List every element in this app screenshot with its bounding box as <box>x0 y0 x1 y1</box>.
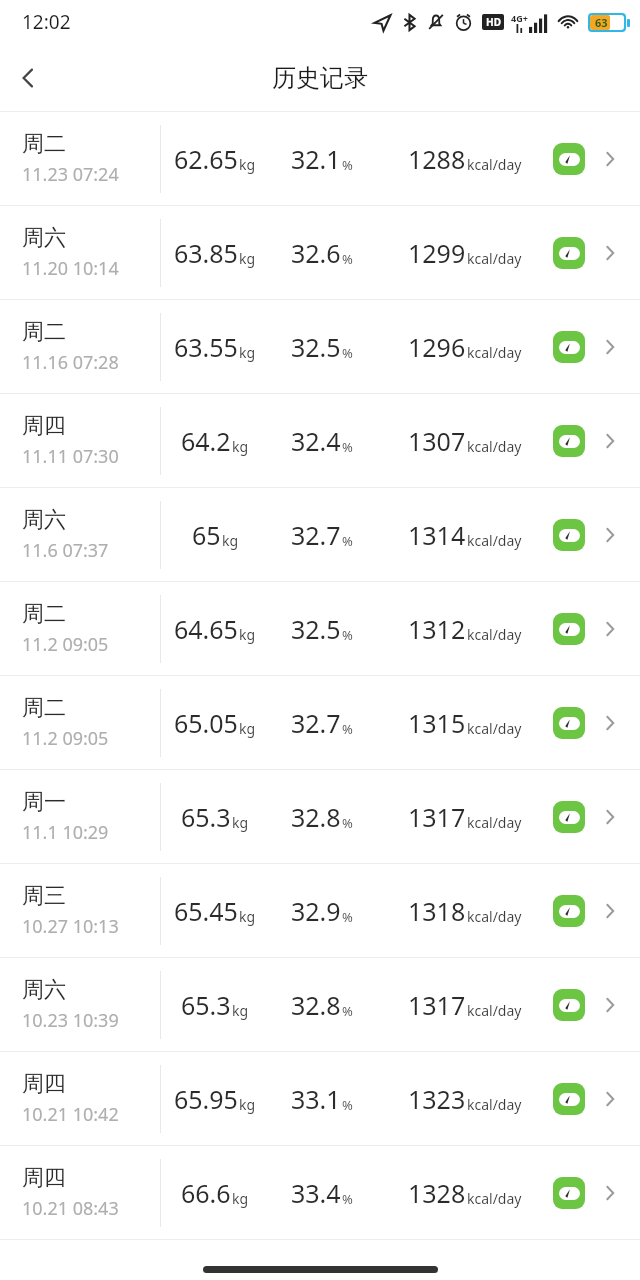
staticText: kg <box>239 719 256 738</box>
button[interactable]: 周四 <box>0 394 640 487</box>
staticText: 63 <box>595 15 624 30</box>
staticText: 33.4 <box>291 1176 341 1210</box>
staticText: % <box>342 1096 353 1114</box>
staticText: kcal/day <box>467 907 522 926</box>
staticText: % <box>342 532 353 550</box>
other: Scale <box>553 425 585 457</box>
staticText: 历史记录 <box>272 63 368 93</box>
staticText: kg <box>239 155 256 174</box>
staticText: kg <box>232 1189 249 1208</box>
staticText: kcal/day <box>467 531 522 550</box>
other: Scale <box>553 237 585 269</box>
staticText: 1312 <box>408 612 466 646</box>
staticText: 1314 <box>408 518 466 552</box>
other: Scale <box>553 801 585 833</box>
staticText: 1328 <box>408 1176 466 1210</box>
staticText: 32.1 <box>291 142 341 176</box>
staticText: 周二 <box>22 600 66 628</box>
staticText: kg <box>239 625 256 644</box>
other: Scale <box>553 143 585 175</box>
button[interactable]: 周四 <box>0 1052 640 1145</box>
staticText: kg <box>222 531 239 550</box>
button[interactable]: 周二 <box>0 300 640 393</box>
staticText: 65 <box>192 518 221 552</box>
staticText: 周二 <box>22 318 66 346</box>
staticText: 66.6 <box>181 1176 231 1210</box>
other: Scale <box>553 331 585 363</box>
other: Scale <box>553 1083 585 1115</box>
staticText: 周六 <box>22 976 66 1004</box>
other: Scale <box>553 519 585 551</box>
button[interactable]: 周二 <box>0 582 640 675</box>
button[interactable]: 周六 <box>0 206 640 299</box>
staticText: kcal/day <box>467 813 522 832</box>
other: Scale <box>553 895 585 927</box>
staticText: % <box>342 438 353 456</box>
staticText: 周二 <box>22 130 66 158</box>
staticText: 周四 <box>22 1164 66 1192</box>
staticText: 11.16 07:28 <box>22 350 119 375</box>
staticText: 1315 <box>408 706 466 740</box>
staticText: % <box>342 626 353 644</box>
staticText: kcal/day <box>467 343 522 362</box>
staticText: 周二 <box>22 694 66 722</box>
staticText: 32.7 <box>291 706 341 740</box>
staticText: 1317 <box>408 988 466 1022</box>
staticText: % <box>342 156 353 174</box>
staticText: kg <box>239 1095 256 1114</box>
button[interactable]: Back <box>0 50 56 106</box>
staticText: 周三 <box>22 882 66 910</box>
staticText: kcal/day <box>467 1001 522 1020</box>
staticText: kcal/day <box>467 719 522 738</box>
staticText: % <box>342 344 353 362</box>
staticText: 32.8 <box>291 988 341 1022</box>
staticText: 10.27 10:13 <box>22 914 119 939</box>
other: Scale <box>553 707 585 739</box>
staticText: % <box>342 1190 353 1208</box>
staticText: 65.3 <box>181 800 231 834</box>
button[interactable]: 周二 <box>0 112 640 205</box>
staticText: 10.21 10:42 <box>22 1102 119 1127</box>
staticText: 周四 <box>22 412 66 440</box>
staticText: kg <box>232 813 249 832</box>
staticText: 32.5 <box>291 330 341 364</box>
staticText: 1299 <box>408 236 466 270</box>
button[interactable]: 周三 <box>0 864 640 957</box>
staticText: 4G+ <box>511 12 528 24</box>
staticText: % <box>342 250 353 268</box>
staticText: 1323 <box>408 1082 466 1116</box>
staticText: kg <box>239 907 256 926</box>
staticText: 11.2 09:05 <box>22 632 109 657</box>
staticText: 63.55 <box>174 330 238 364</box>
staticText: 10.23 10:39 <box>22 1008 119 1033</box>
staticText: 64.2 <box>181 424 231 458</box>
staticText: kg <box>239 343 256 362</box>
staticText: 周四 <box>22 1070 66 1098</box>
button[interactable]: 周四 <box>0 1146 640 1239</box>
staticText: 63.85 <box>174 236 238 270</box>
staticText: 32.9 <box>291 894 341 928</box>
staticText: 11.11 07:30 <box>22 444 119 469</box>
staticText: 周六 <box>22 224 66 252</box>
staticText: % <box>342 908 353 926</box>
button[interactable]: 周二 <box>0 676 640 769</box>
button[interactable]: 周一 <box>0 770 640 863</box>
staticText: 12:02 <box>22 9 71 35</box>
staticText: 11.2 09:05 <box>22 726 109 751</box>
staticText: 1317 <box>408 800 466 834</box>
staticText: 11.20 10:14 <box>22 256 119 281</box>
staticText: 65.3 <box>181 988 231 1022</box>
staticText: kg <box>232 437 249 456</box>
staticText: 1288 <box>408 142 466 176</box>
staticText: 32.5 <box>291 612 341 646</box>
staticText: kcal/day <box>467 437 522 456</box>
button[interactable]: 周六 <box>0 488 640 581</box>
staticText: % <box>342 720 353 738</box>
staticText: 65.95 <box>174 1082 238 1116</box>
other: Scale <box>553 613 585 645</box>
button[interactable]: 周六 <box>0 958 640 1051</box>
staticText: 32.8 <box>291 800 341 834</box>
staticText: kcal/day <box>467 1095 522 1114</box>
staticText: % <box>342 814 353 832</box>
staticText: 1307 <box>408 424 466 458</box>
